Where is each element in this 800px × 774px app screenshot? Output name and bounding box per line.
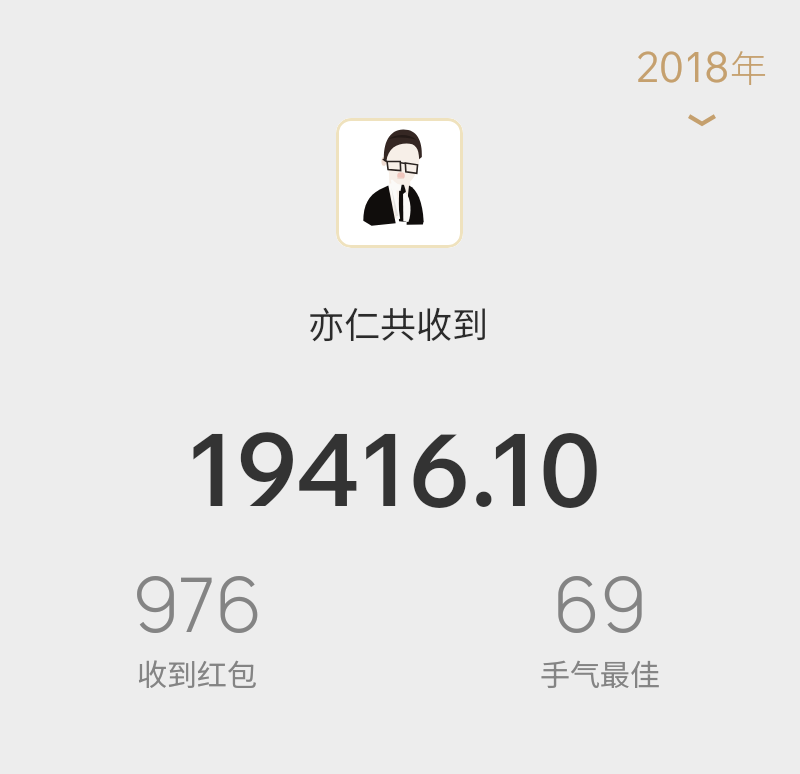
staticText: 手气最佳 [540,651,660,694]
staticText: 976 [132,551,263,655]
staticText: 亦仁共收到 [308,296,489,348]
button[interactable]: 69 [400,551,800,696]
staticText: 收到红包 [137,651,257,694]
staticText: 69 [553,551,647,655]
staticText: 2018 [636,41,730,93]
button[interactable]: 976 [0,551,397,696]
staticText: 19416.10 [185,404,603,531]
staticText: 年 [730,39,767,93]
button[interactable]: Profile avatar [336,118,463,248]
button[interactable]: Select year 2018 [628,35,775,130]
